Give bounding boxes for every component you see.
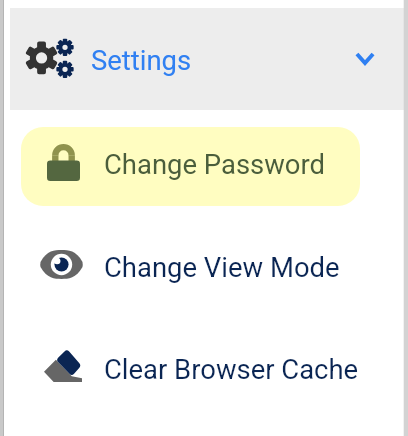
button[interactable]: Clear Browser Cache: [10, 330, 404, 402]
other: Collapse: [355, 52, 375, 65]
other: Settings icon: [26, 38, 72, 76]
staticText: Settings: [91, 45, 192, 77]
staticText: Change View Mode: [104, 252, 340, 284]
button[interactable]: Change Password: [21, 127, 360, 206]
staticText: Clear Browser Cache: [104, 354, 359, 386]
button[interactable]: Change View Mode: [10, 228, 404, 300]
staticText: Change Password: [104, 149, 326, 181]
button[interactable]: Settings icon: [10, 8, 404, 110]
